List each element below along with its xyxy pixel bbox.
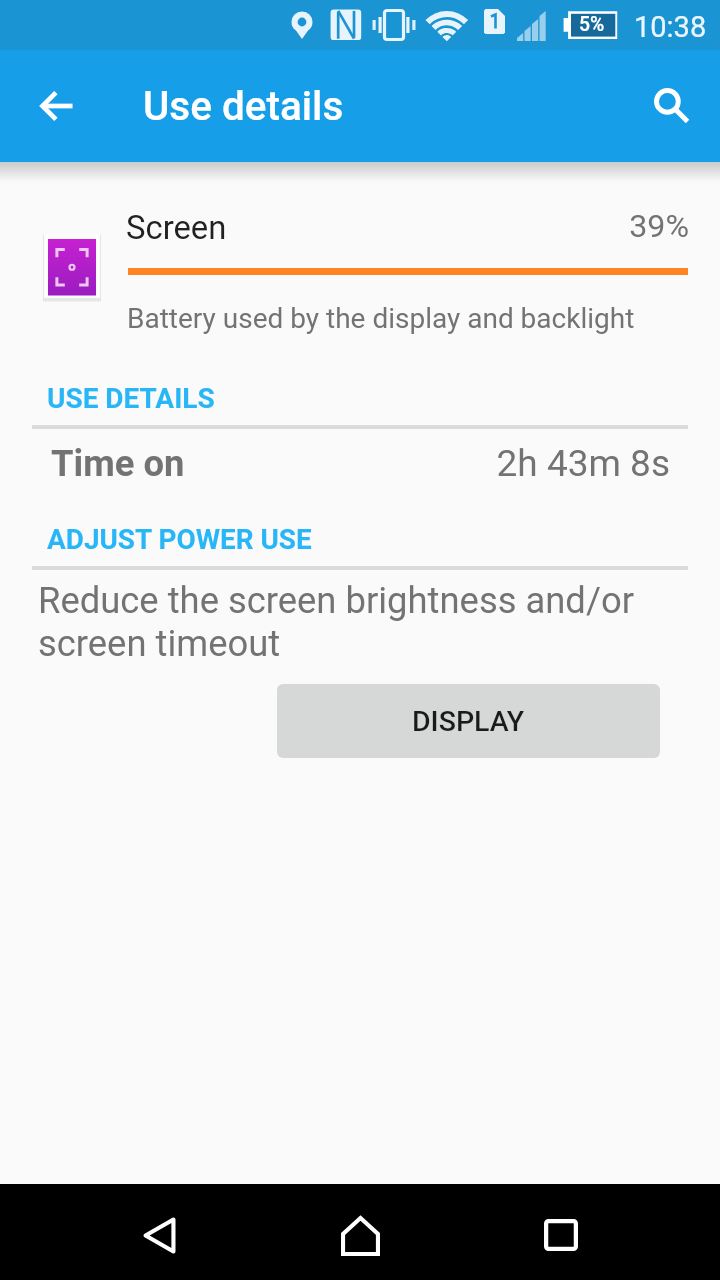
- staticText: 5%: [579, 13, 605, 36]
- staticText: Screen: [126, 209, 227, 247]
- staticText: USE DETAILS: [47, 382, 215, 415]
- staticText: Use details: [143, 83, 344, 130]
- staticText: DISPLAY: [412, 705, 525, 738]
- staticText: 10:38: [634, 10, 707, 44]
- staticText: Reduce the screen brightness and/or scre…: [38, 579, 663, 665]
- staticText: Time on: [51, 442, 185, 485]
- staticText: 39%: [500, 207, 689, 245]
- staticText: Battery used by the display and backligh…: [127, 302, 635, 335]
- button[interactable]: DISPLAY: [277, 684, 660, 758]
- staticText: ADJUST POWER USE: [47, 523, 312, 556]
- button[interactable]: Search: [624, 66, 704, 146]
- button[interactable]: Back: [110, 1184, 210, 1280]
- button[interactable]: Recent apps: [510, 1184, 610, 1280]
- button[interactable]: Home: [310, 1184, 410, 1280]
- staticText: 2h 43m 8s: [420, 442, 670, 485]
- button[interactable]: Navigate up: [16, 66, 96, 146]
